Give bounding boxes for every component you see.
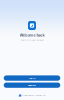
staticText: Welcome back [19,32,44,37]
button[interactable]: Register [4,82,60,88]
staticText: Log in [29,76,35,80]
staticText: Need help? Contact us [22,93,45,97]
button[interactable]: Log in [4,75,60,81]
staticText: Sign in to your account [20,38,43,41]
button[interactable]: Need help? Contact us [19,93,45,97]
staticText: Register [28,84,36,87]
